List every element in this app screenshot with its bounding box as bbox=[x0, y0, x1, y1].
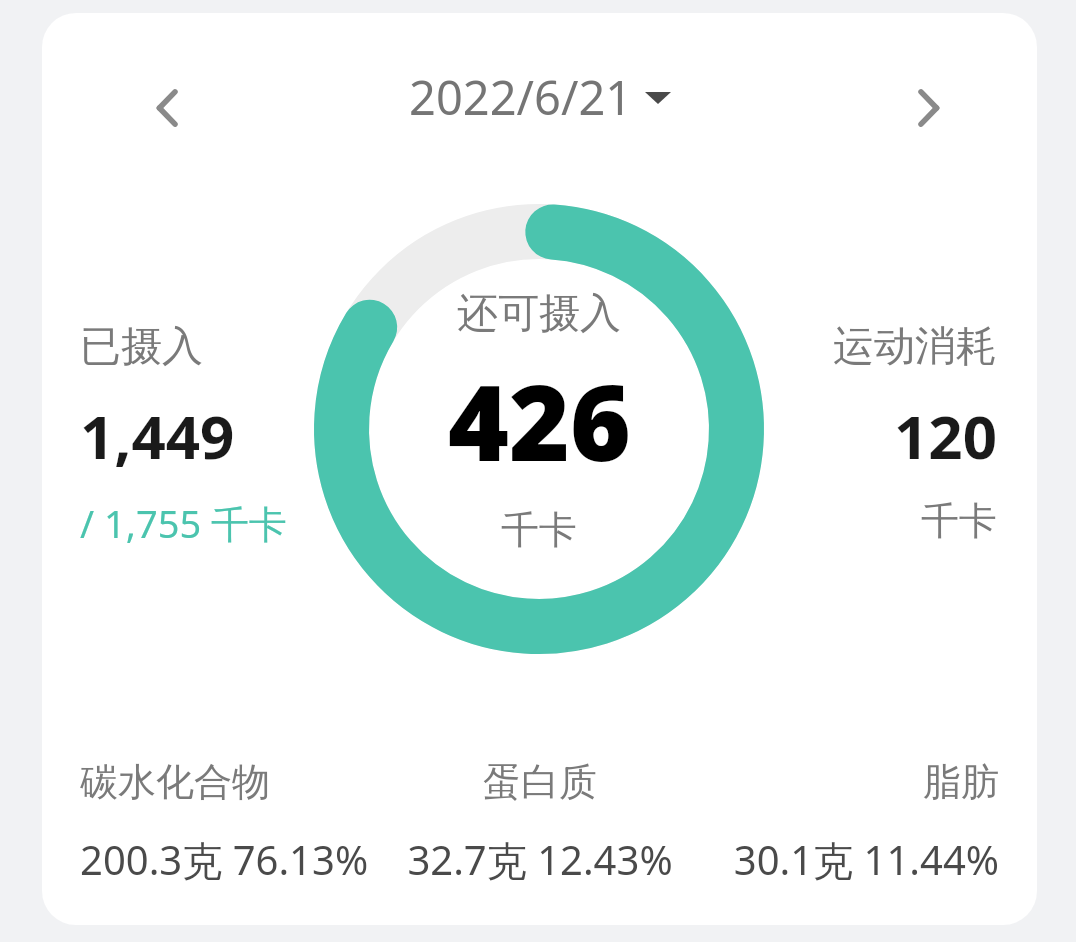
staticText: 蛋白质 bbox=[483, 758, 597, 806]
staticText: 2022/6/21 bbox=[409, 65, 633, 129]
button[interactable]: 脂肪 bbox=[693, 758, 999, 887]
staticText: 120 bbox=[894, 395, 997, 477]
staticText: 千卡 bbox=[921, 497, 997, 545]
staticText: 426 bbox=[448, 350, 631, 492]
button[interactable]: 蛋白质 bbox=[387, 758, 693, 887]
staticText: 1,449 bbox=[80, 395, 235, 477]
staticText: 还可摄入 bbox=[457, 288, 621, 340]
button[interactable]: 已摄入 bbox=[80, 321, 320, 549]
button[interactable]: Previous day bbox=[114, 53, 224, 163]
staticText: / 1,755 千卡 bbox=[80, 497, 288, 549]
staticText: 200.3克 76.13% bbox=[80, 832, 369, 887]
button[interactable]: 运动消耗 bbox=[757, 321, 997, 545]
button[interactable]: 碳水化合物 bbox=[80, 758, 387, 887]
staticText: 碳水化合物 bbox=[80, 758, 270, 806]
staticText: 已摄入 bbox=[80, 321, 203, 373]
staticText: 千卡 bbox=[501, 506, 577, 554]
staticText: 30.1克 11.44% bbox=[733, 832, 999, 887]
button[interactable]: Next day bbox=[872, 53, 982, 163]
staticText: 运动消耗 bbox=[833, 321, 997, 373]
staticText: 脂肪 bbox=[923, 758, 999, 806]
staticText: 32.7克 12.43% bbox=[407, 832, 673, 887]
button[interactable]: 2022/6/21 bbox=[409, 65, 671, 129]
